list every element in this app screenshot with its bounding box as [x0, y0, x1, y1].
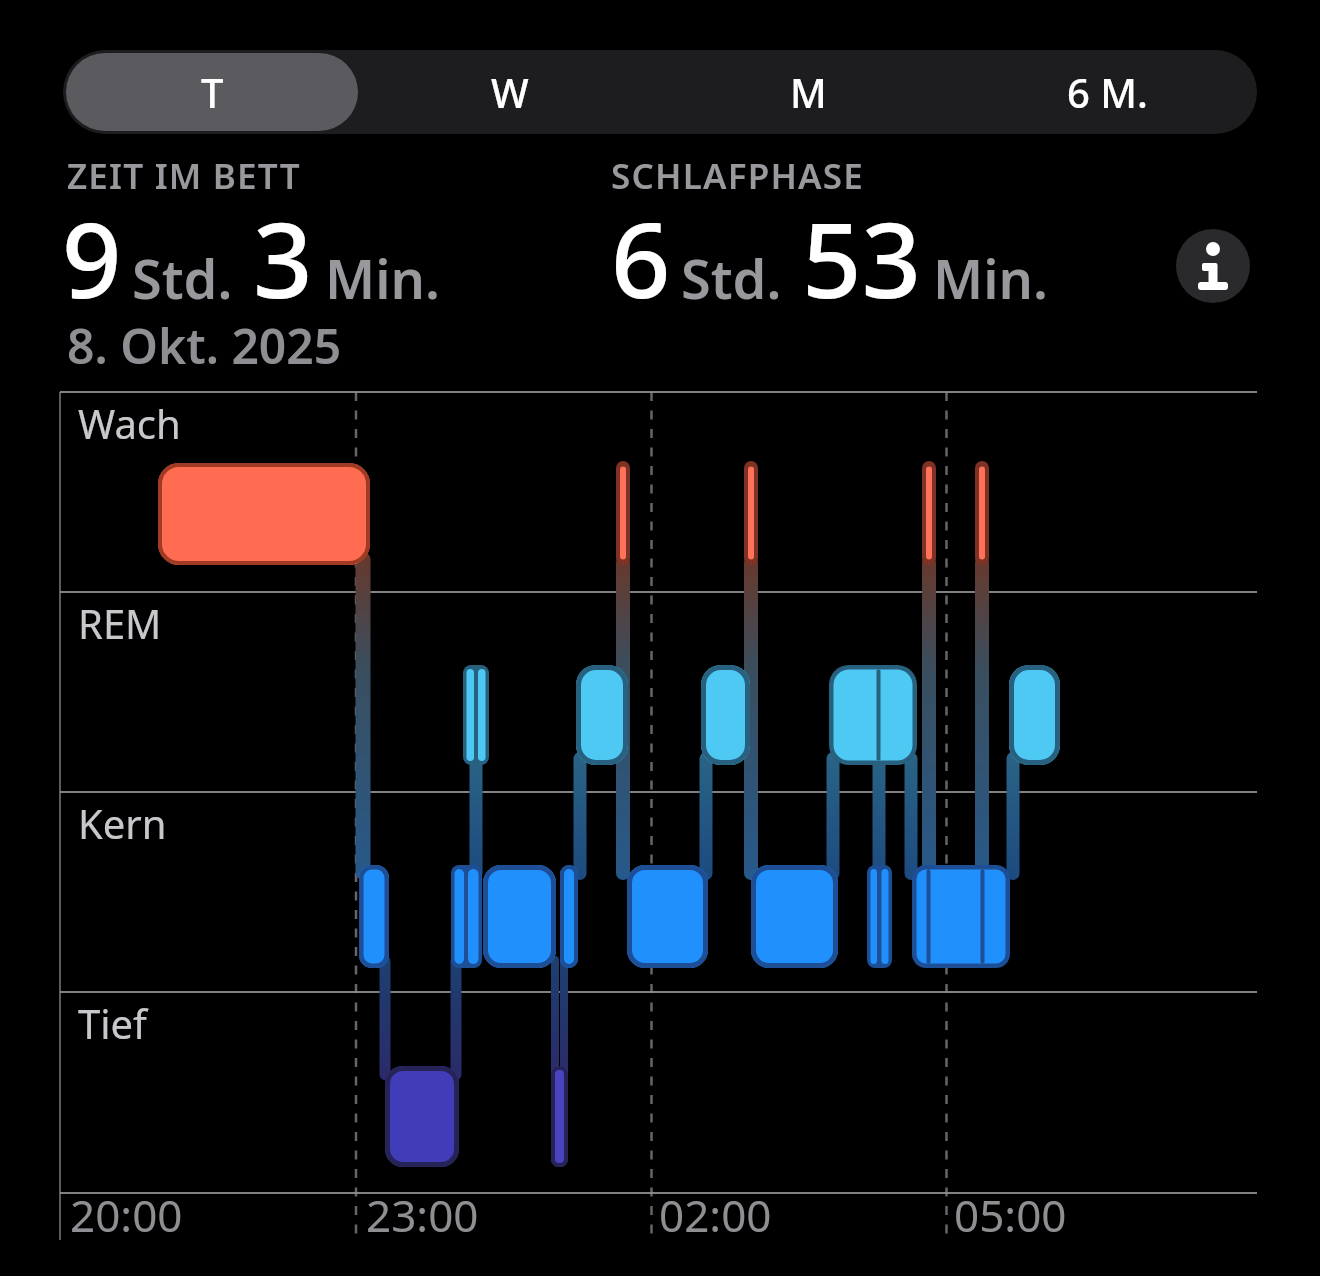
- button[interactable]: [1176, 229, 1250, 303]
- button[interactable]: M: [662, 53, 955, 131]
- staticText: Tief: [78, 996, 147, 1050]
- staticText: Std.: [132, 241, 233, 315]
- staticText: ZEIT IM BETT: [67, 152, 301, 200]
- button[interactable]: 6 M.: [961, 53, 1254, 131]
- staticText: 02:00: [659, 1185, 772, 1245]
- staticText: REM: [78, 596, 162, 650]
- staticText: 23:00: [366, 1185, 479, 1245]
- staticText: 53: [802, 187, 921, 329]
- staticText: 3: [253, 187, 313, 329]
- button[interactable]: T: [66, 53, 358, 131]
- staticText: 6: [611, 187, 671, 329]
- staticText: 6 M.: [1067, 65, 1148, 119]
- staticText: Kern: [78, 796, 167, 850]
- staticText: M: [790, 65, 827, 119]
- staticText: 9: [62, 187, 122, 329]
- staticText: Min.: [933, 241, 1048, 315]
- button[interactable]: W: [364, 53, 656, 131]
- staticText: 05:00: [954, 1185, 1067, 1245]
- staticText: Min.: [325, 241, 440, 315]
- staticText: 20:00: [70, 1185, 183, 1245]
- staticText: Std.: [681, 241, 782, 315]
- staticText: Wach: [78, 396, 181, 450]
- staticText: T: [201, 65, 224, 119]
- staticText: W: [491, 65, 529, 119]
- staticText: 8. Okt. 2025: [67, 313, 342, 378]
- staticText: SCHLAFPHASE: [611, 152, 864, 200]
